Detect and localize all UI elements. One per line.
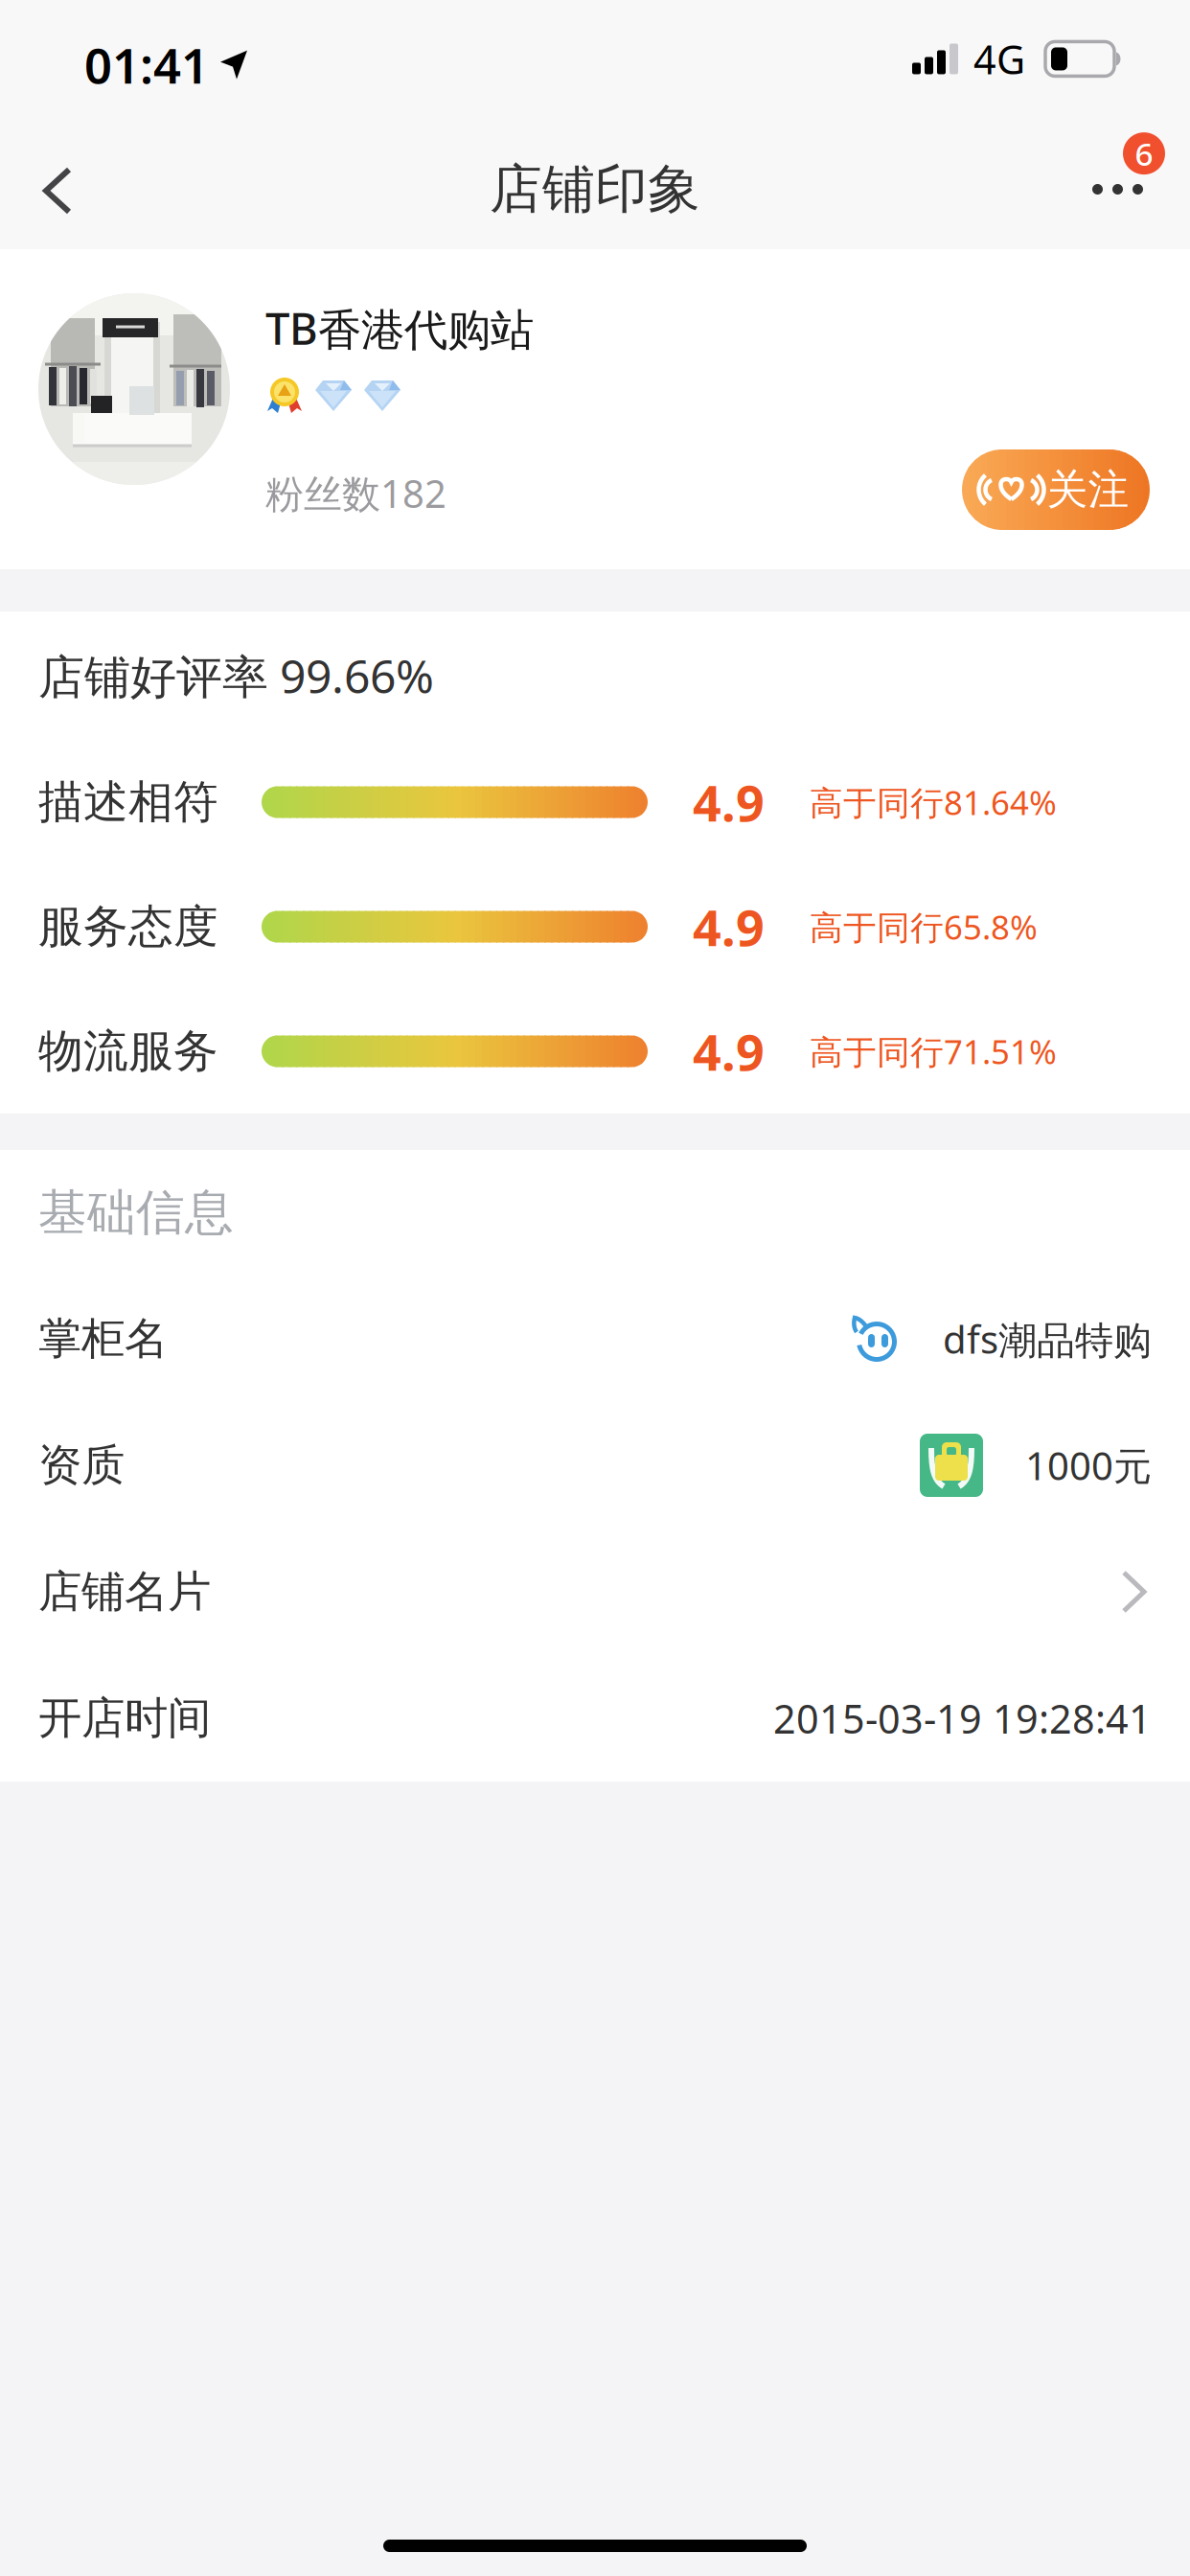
staticText: 物流服务 bbox=[38, 1024, 218, 1079]
button[interactable]: 联系掌柜 bbox=[851, 1316, 899, 1362]
button[interactable]: 店铺名片 bbox=[0, 1529, 1190, 1655]
staticText: TB香港代购站 bbox=[265, 299, 534, 357]
staticText: 基础信息 bbox=[38, 1183, 234, 1243]
staticText: 店铺印象 bbox=[490, 157, 700, 221]
staticText: 2015-03-19 19:28:41 bbox=[773, 1692, 1152, 1745]
button[interactable]: More bbox=[1085, 126, 1190, 249]
staticText: 店铺名片 bbox=[38, 1565, 211, 1619]
staticText: 4.9 bbox=[693, 1018, 765, 1084]
button[interactable]: Back bbox=[0, 126, 102, 249]
staticText: 4.9 bbox=[693, 894, 765, 960]
staticText: 4G bbox=[973, 33, 1025, 85]
staticText: 高于同行65.8% bbox=[810, 905, 1038, 949]
staticText: 资质 bbox=[38, 1439, 125, 1492]
staticText: 01:41 bbox=[84, 33, 209, 97]
button[interactable]: 关注 bbox=[962, 449, 1150, 530]
staticText: 描述相符 bbox=[38, 775, 218, 830]
staticText: 服务态度 bbox=[38, 899, 218, 954]
staticText: 开店时间 bbox=[38, 1692, 211, 1745]
staticText: 店铺好评率 99.66% bbox=[38, 645, 434, 706]
staticText: 高于同行71.51% bbox=[810, 1029, 1057, 1073]
staticText: 粉丝数182 bbox=[265, 468, 446, 519]
staticText: 4.9 bbox=[693, 769, 765, 835]
staticText: 关注 bbox=[1047, 465, 1129, 515]
staticText: dfs潮品特购 bbox=[943, 1313, 1152, 1364]
staticText: 高于同行81.64% bbox=[810, 780, 1057, 824]
staticText: 6 bbox=[1135, 132, 1153, 175]
staticText: 掌柜名 bbox=[38, 1312, 168, 1366]
staticText: 1000元 bbox=[1025, 1440, 1152, 1491]
